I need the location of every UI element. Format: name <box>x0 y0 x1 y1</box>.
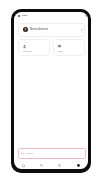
staticText: Marco Antonio <box>30 27 48 30</box>
button[interactable]: Activity <box>50 161 69 169</box>
button[interactable]: Search <box>32 161 50 169</box>
staticText: Results <box>58 50 64 52</box>
button[interactable]: Log Out <box>18 148 86 159</box>
staticText: Leaderboard <box>23 50 33 52</box>
button[interactable]: Leaderboard <box>18 39 50 56</box>
button[interactable]: Menu <box>16 13 21 18</box>
staticText: Profile <box>22 14 28 16</box>
button[interactable]: Profile <box>69 161 88 169</box>
button[interactable]: Home <box>14 161 32 169</box>
button[interactable]: Marco Antonio <box>18 23 85 37</box>
button[interactable]: Results <box>53 39 85 56</box>
staticText: Log Out <box>26 152 34 155</box>
button[interactable]: Search <box>84 13 88 18</box>
button[interactable]: Edit profile <box>79 27 84 32</box>
